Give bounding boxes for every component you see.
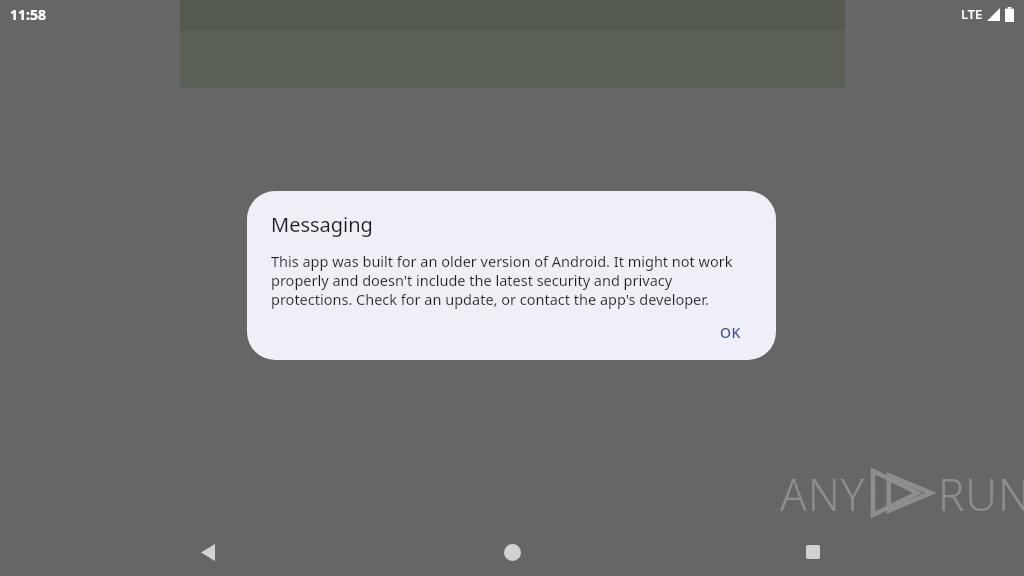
staticText: This app was built for an older version …	[271, 251, 752, 310]
staticText: Messaging	[271, 211, 373, 238]
button[interactable]: Back	[178, 528, 238, 576]
button[interactable]: Home	[482, 528, 542, 576]
staticText: RUN	[938, 464, 1024, 522]
button[interactable]: Recent apps	[783, 528, 843, 576]
staticText: LTE	[961, 5, 983, 23]
staticText: 11:58	[10, 5, 46, 24]
staticText: OK	[720, 323, 742, 342]
staticText: ANY	[780, 464, 866, 522]
button[interactable]: OK	[710, 317, 752, 348]
